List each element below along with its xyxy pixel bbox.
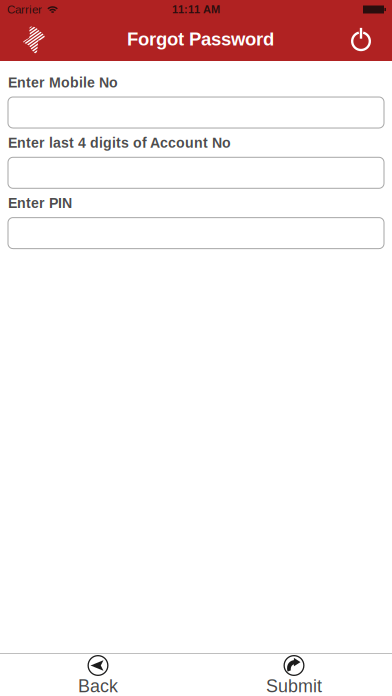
staticText: Enter PIN: [8, 195, 72, 211]
button[interactable]: Log out: [340, 19, 382, 61]
staticText: Enter last 4 digits of Account No: [8, 135, 231, 151]
button[interactable]: Submit: [239, 654, 349, 696]
staticText: Submit: [266, 676, 322, 696]
button[interactable]: Back: [43, 654, 153, 696]
staticText: Carrier: [7, 3, 42, 16]
button[interactable]: Home: [13, 19, 55, 61]
staticText: Back: [78, 676, 118, 696]
staticText: Forgot Password: [127, 29, 274, 49]
staticText: 11:11 AM: [172, 3, 220, 16]
staticText: Enter Mobile No: [8, 75, 118, 90]
